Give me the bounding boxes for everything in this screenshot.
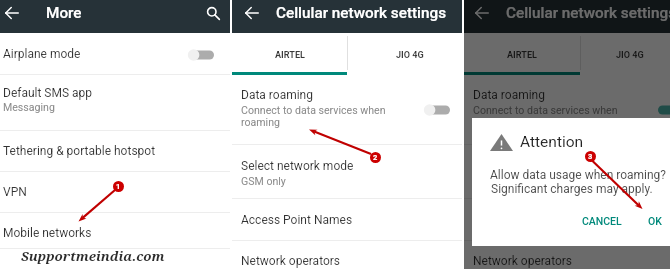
staticText: Access Point Names bbox=[241, 213, 353, 227]
staticText: Cellular network settings bbox=[506, 4, 670, 22]
staticText: Select network mode bbox=[473, 159, 586, 173]
button[interactable]: OK bbox=[644, 212, 666, 230]
staticText: JIO 4G bbox=[396, 50, 424, 61]
staticText: Connect to data services when roaming bbox=[473, 104, 625, 128]
button[interactable]: Data roaming bbox=[232, 76, 462, 144]
staticText: 1 bbox=[116, 182, 121, 191]
staticText: Airplane mode bbox=[3, 47, 81, 61]
staticText: Access Point Names bbox=[473, 213, 585, 227]
staticText: Default SMS app bbox=[3, 86, 93, 100]
button[interactable]: Network operators bbox=[464, 241, 670, 269]
button[interactable]: AIRTEL bbox=[464, 33, 580, 75]
staticText: JIO 4G bbox=[616, 50, 644, 61]
button[interactable]: JIO 4G bbox=[347, 33, 462, 75]
button[interactable]: Toggle bbox=[188, 48, 214, 62]
button[interactable]: Tethering & portable hotspot bbox=[0, 131, 230, 171]
staticText: Mobile networks bbox=[3, 226, 92, 240]
button[interactable]: Data roaming bbox=[464, 76, 670, 144]
button[interactable]: Network operators bbox=[232, 241, 462, 269]
staticText: CANCEL bbox=[582, 215, 622, 227]
button[interactable]: Search bbox=[201, 1, 225, 25]
staticText: Tethering & portable hotspot bbox=[3, 144, 156, 158]
staticText: More bbox=[46, 4, 82, 22]
staticText: AIRTEL bbox=[507, 50, 537, 61]
button[interactable]: Select network mode bbox=[232, 145, 462, 198]
button[interactable]: Airplane mode bbox=[0, 33, 230, 74]
button[interactable]: Back bbox=[471, 2, 493, 24]
staticText: Messaging bbox=[3, 101, 55, 113]
staticText: 2 bbox=[373, 153, 378, 162]
staticText: VPN bbox=[3, 185, 27, 199]
button[interactable]: AIRTEL bbox=[232, 33, 347, 75]
button[interactable]: Access Point Names bbox=[232, 199, 462, 240]
staticText: GSM only bbox=[241, 175, 286, 187]
staticText: Select network mode bbox=[241, 159, 354, 173]
staticText: Data roaming bbox=[473, 88, 545, 102]
staticText: Connect to data services when roaming bbox=[241, 104, 393, 128]
staticText: GSM only bbox=[473, 175, 518, 187]
staticText: Data roaming bbox=[241, 88, 313, 102]
button[interactable]: CANCEL bbox=[578, 212, 626, 230]
staticText: OK bbox=[648, 215, 662, 227]
button[interactable]: Toggle bbox=[424, 103, 450, 117]
staticText: Network operators bbox=[241, 254, 341, 268]
button[interactable]: VPN bbox=[0, 172, 230, 212]
button[interactable]: Select network mode bbox=[464, 145, 670, 198]
button[interactable]: Back bbox=[1, 2, 23, 24]
staticText: 3 bbox=[588, 152, 593, 161]
button[interactable]: Toggle bbox=[658, 103, 670, 117]
staticText: Cellular network settings bbox=[276, 4, 447, 22]
staticText: Attention bbox=[520, 133, 584, 151]
staticText: Allow data usage when roaming? bbox=[490, 168, 667, 182]
button[interactable]: Default SMS app bbox=[0, 75, 230, 130]
button[interactable]: Back bbox=[241, 2, 263, 24]
staticText: Network operators bbox=[473, 254, 573, 268]
staticText: Supportmeindia.com bbox=[21, 247, 165, 265]
button[interactable]: JIO 4G bbox=[580, 33, 670, 75]
button[interactable]: Access Point Names bbox=[464, 199, 670, 240]
staticText: Significant charges may apply. bbox=[491, 182, 653, 196]
staticText: AIRTEL bbox=[275, 50, 305, 61]
button[interactable]: Mobile networks bbox=[0, 213, 230, 248]
